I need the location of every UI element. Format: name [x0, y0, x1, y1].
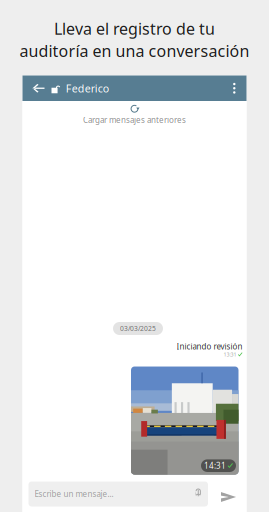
staticText: 03/03/2025	[120, 324, 156, 333]
staticText: 13:31	[223, 351, 236, 358]
staticText: auditoría en una conversación	[19, 40, 249, 61]
staticText: Escribe un mensaje...	[34, 489, 113, 499]
button[interactable]: More options	[223, 75, 246, 101]
staticText: Cargar mensajes anteriores	[83, 114, 186, 125]
staticText: Federico	[66, 81, 109, 95]
staticText: Iniciando revisión	[176, 341, 242, 352]
button[interactable]: Cargar mensajes anteriores	[22, 104, 246, 128]
button[interactable]: Attach	[189, 481, 208, 506]
button[interactable]: Send	[213, 484, 243, 509]
button[interactable]: Back	[22, 75, 51, 101]
staticText: Lleva el registro de tu	[54, 18, 215, 39]
staticText: 14:31	[204, 460, 226, 471]
